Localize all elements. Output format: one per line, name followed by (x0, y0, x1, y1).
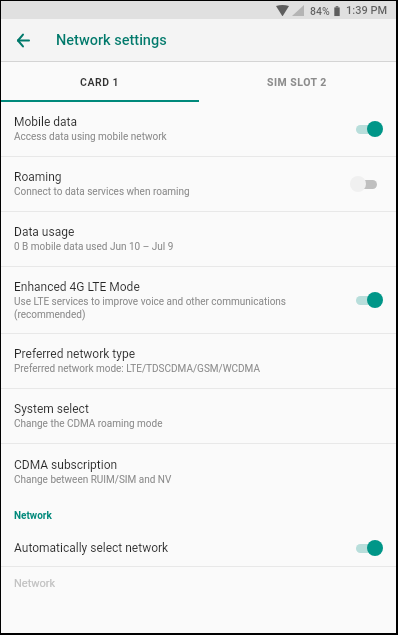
staticText: Network (14, 577, 56, 590)
button[interactable]: Roaming (1, 157, 396, 211)
staticText: 0 B mobile data used Jun 10 – Jul 9 (14, 241, 174, 253)
staticText: Automatically select network (14, 541, 169, 555)
staticText: Change the CDMA roaming mode (14, 418, 163, 430)
staticText: System select (14, 402, 89, 416)
staticText: Data usage (14, 225, 75, 239)
button[interactable]: SIM SLOT 2 (198, 62, 396, 102)
staticText: 1:39 PM (346, 4, 388, 17)
staticText: Preferred network mode: LTE/TDSCDMA/GSM/… (14, 363, 260, 375)
button[interactable]: CDMA subscription (1, 444, 396, 499)
staticText: Use LTE services to improve voice and ot… (14, 296, 342, 320)
staticText: Mobile data (14, 115, 77, 129)
staticText: CDMA subscription (14, 458, 118, 472)
staticText: Network settings (56, 32, 167, 49)
staticText: Preferred network type (14, 347, 136, 361)
button[interactable]: Automatically select network (1, 529, 396, 566)
button[interactable]: CARD 1 (1, 62, 198, 102)
staticText: 84% (310, 5, 330, 17)
button[interactable]: Data usage (1, 212, 396, 266)
button[interactable]: Enhanced 4G LTE Mode (1, 267, 396, 333)
staticText: Enhanced 4G LTE Mode (14, 280, 140, 294)
staticText: Network (14, 510, 52, 522)
staticText: SIM SLOT 2 (267, 76, 327, 88)
button[interactable]: Preferred network type (1, 334, 396, 388)
staticText: Roaming (14, 170, 62, 184)
staticText: CARD 1 (80, 76, 120, 88)
button[interactable]: Mobile data (1, 102, 396, 156)
staticText: Change between RUIM/SIM and NV (14, 474, 172, 486)
button[interactable]: Back (1, 19, 45, 62)
staticText: Access data using mobile network (14, 131, 167, 143)
staticText: Connect to data services when roaming (14, 186, 190, 198)
button[interactable]: System select (1, 389, 396, 443)
